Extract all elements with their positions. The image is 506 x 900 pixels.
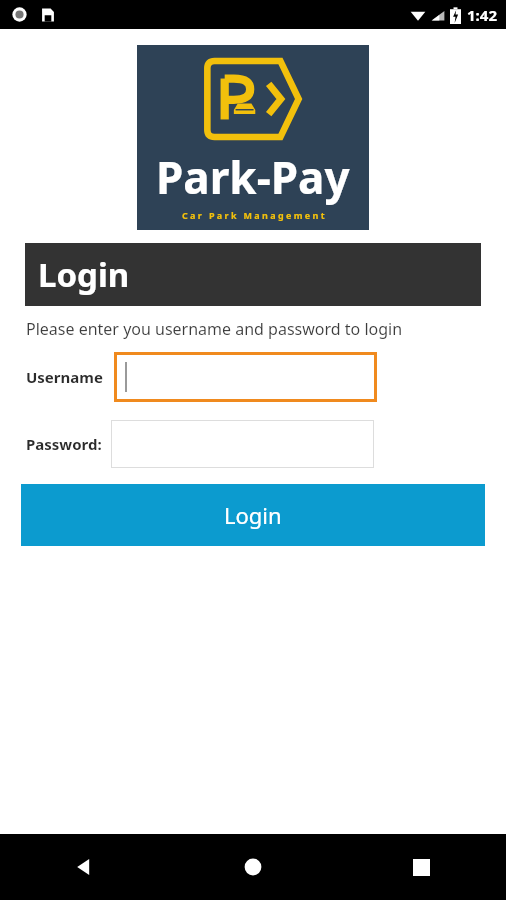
staticText: C a r P a r k M a n a g e m e n t [182, 209, 325, 221]
staticText: 1:42 [467, 5, 497, 25]
staticText: Park-Pay [156, 147, 350, 207]
button[interactable]: Back [0, 834, 168, 900]
staticText: Login [38, 252, 130, 297]
staticText: Password: [26, 434, 102, 454]
staticText: Please enter you username and password t… [26, 318, 403, 340]
button[interactable] [111, 420, 374, 468]
button[interactable]: Home [168, 834, 337, 900]
staticText: Login [224, 500, 282, 530]
button[interactable]: Login [21, 484, 485, 546]
button[interactable]: Recent apps [337, 834, 506, 900]
staticText: Username [26, 367, 103, 387]
button[interactable] [114, 352, 377, 402]
